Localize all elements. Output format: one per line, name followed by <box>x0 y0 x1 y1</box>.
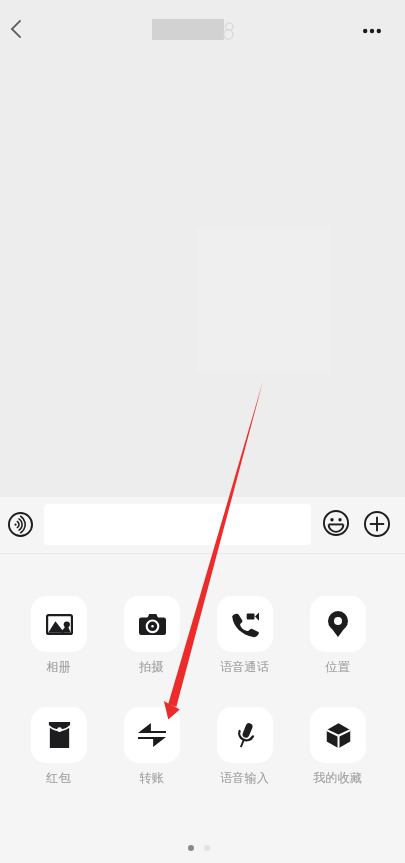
button[interactable]: 转账 <box>105 707 198 795</box>
button[interactable]: Voice message <box>4 508 37 541</box>
button[interactable]: 相册 <box>12 596 105 684</box>
button[interactable]: 红包 <box>12 707 105 795</box>
staticText: 相册 <box>46 659 71 674</box>
staticText: 转账 <box>139 770 164 785</box>
button[interactable]: More options <box>350 9 394 53</box>
staticText: 语音通话 <box>220 659 269 674</box>
staticText: 位置 <box>325 659 350 674</box>
button[interactable]: Back <box>0 9 36 49</box>
staticText: 我的收藏 <box>313 770 362 785</box>
staticText: 红包 <box>46 770 71 785</box>
button[interactable]: 语音通话 <box>198 596 291 684</box>
staticText: 拍摄 <box>139 659 164 674</box>
button[interactable]: Emoji <box>320 507 351 538</box>
staticText: 语音输入 <box>220 770 269 785</box>
button[interactable]: More <box>361 508 392 539</box>
button[interactable] <box>44 504 311 545</box>
button[interactable]: 我的收藏 <box>291 707 384 795</box>
button[interactable]: 位置 <box>291 596 384 684</box>
button[interactable]: 语音输入 <box>198 707 291 795</box>
button[interactable]: 拍摄 <box>105 596 198 684</box>
